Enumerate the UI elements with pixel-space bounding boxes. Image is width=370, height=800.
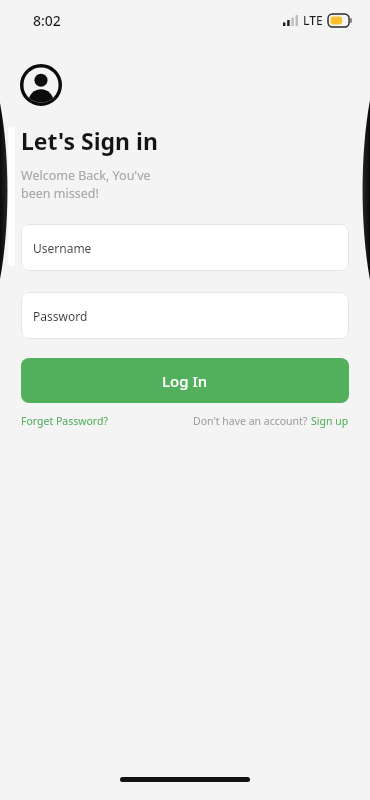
staticText: LTE xyxy=(303,12,323,28)
button[interactable]: Profile xyxy=(20,64,62,106)
staticText: Sign up xyxy=(311,414,349,428)
button[interactable]: Password xyxy=(21,292,349,339)
staticText: Log In xyxy=(162,371,208,391)
staticText: Don't have an account? xyxy=(193,414,311,428)
staticText: Forget Password? xyxy=(21,414,108,428)
button[interactable]: Username xyxy=(21,224,349,271)
staticText: Let's Sign in xyxy=(21,125,158,156)
staticText: Password xyxy=(33,308,88,324)
button[interactable]: Forget Password? xyxy=(21,414,108,428)
button[interactable]: Log In xyxy=(21,358,349,403)
staticText: Username xyxy=(33,240,92,256)
staticText: Welcome Back, You've been missed! xyxy=(21,167,151,202)
staticText: 8:02 xyxy=(33,11,61,30)
button[interactable]: Sign up xyxy=(311,414,349,428)
